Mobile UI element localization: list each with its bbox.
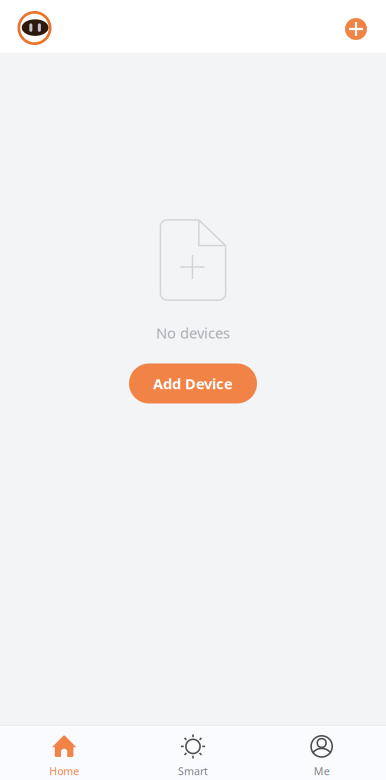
button[interactable]: Add device <box>345 17 367 39</box>
button[interactable]: Me <box>257 725 386 780</box>
staticText: Add Device <box>153 374 233 393</box>
staticText: Home <box>49 764 79 778</box>
button[interactable]: Smart <box>129 725 257 780</box>
staticText: No devices <box>156 323 230 342</box>
button[interactable]: App home <box>17 11 51 45</box>
staticText: Me <box>314 764 330 778</box>
button[interactable]: Home <box>0 725 129 780</box>
button[interactable]: Add Device <box>129 363 257 403</box>
staticText: Smart <box>178 764 208 778</box>
